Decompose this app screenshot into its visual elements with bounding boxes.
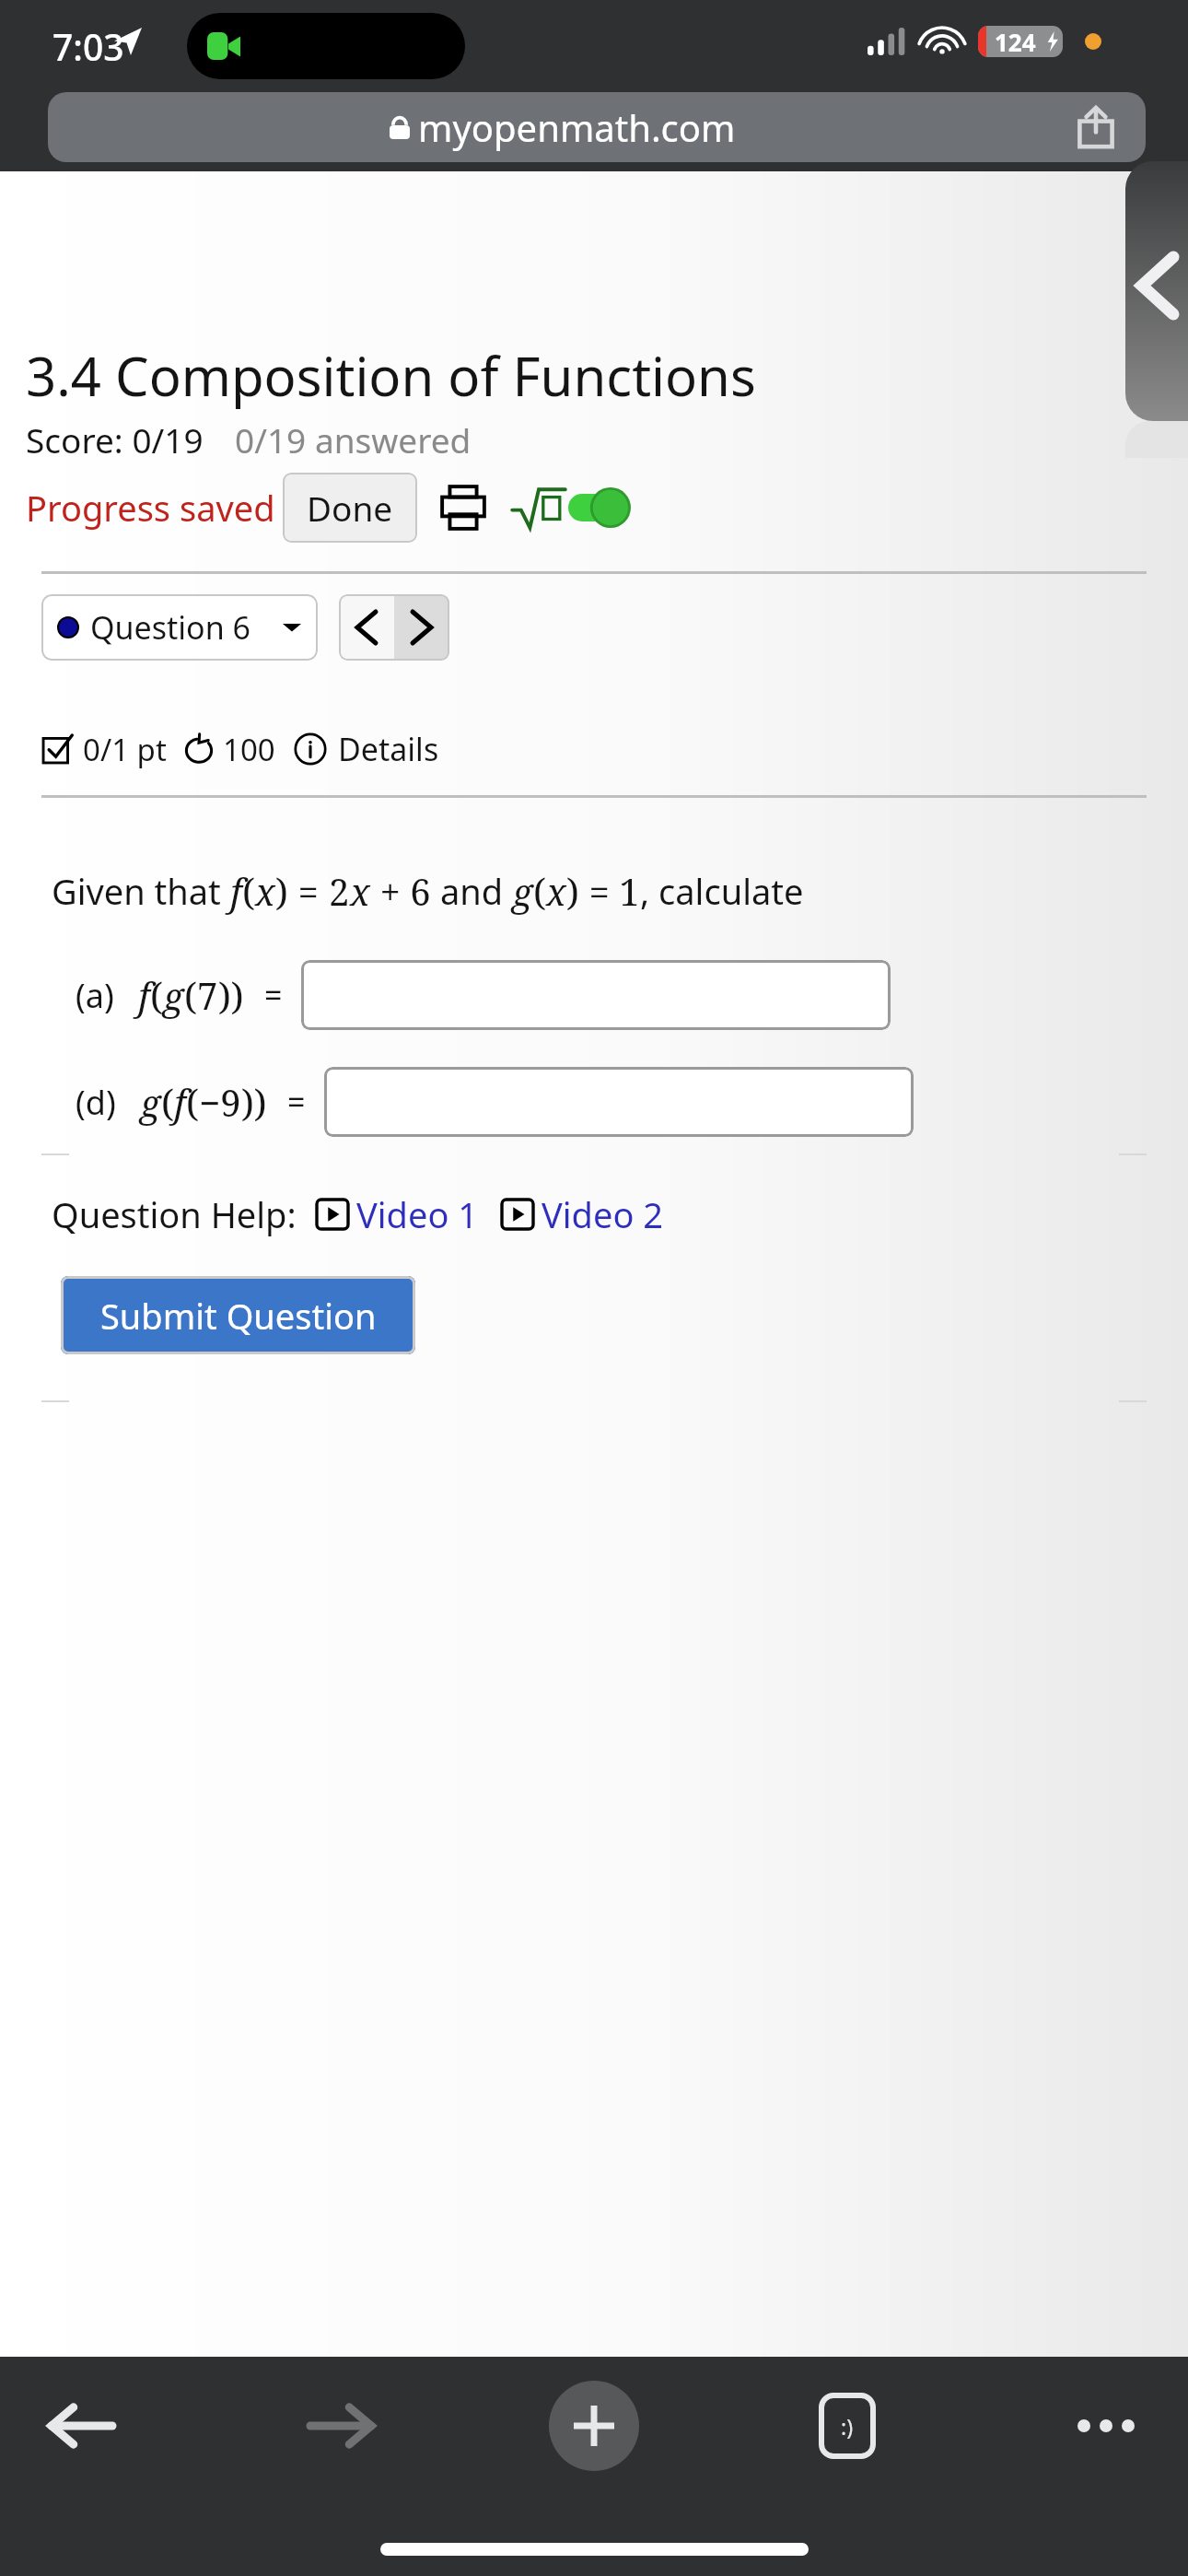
staticText: ( bbox=[161, 1077, 174, 1127]
button[interactable]: Done bbox=[283, 473, 417, 543]
staticText: Question 6 bbox=[90, 606, 250, 649]
button[interactable]: Toggle equation editor bbox=[568, 486, 636, 530]
staticText: = 1 bbox=[579, 866, 640, 916]
staticText: 100 bbox=[223, 729, 275, 770]
staticText: 7:03 bbox=[52, 22, 124, 71]
staticText: (d) bbox=[76, 1080, 116, 1125]
button[interactable]: Video 1 bbox=[317, 1190, 479, 1238]
staticText: f bbox=[138, 970, 150, 1020]
staticText: ( bbox=[242, 866, 255, 916]
staticText: Video 2 bbox=[542, 1190, 664, 1238]
staticText: x bbox=[255, 866, 275, 916]
button[interactable]: Answer field (a) bbox=[301, 960, 891, 1030]
staticText: ) bbox=[566, 866, 579, 916]
staticText: x bbox=[350, 866, 370, 916]
button[interactable]: Next question bbox=[394, 594, 449, 661]
button[interactable]: Video 2 bbox=[502, 1190, 664, 1238]
staticText: ( bbox=[533, 866, 546, 916]
staticText: g bbox=[512, 866, 533, 916]
staticText: = bbox=[288, 866, 329, 916]
button[interactable]: Math mode bbox=[511, 484, 566, 532]
button[interactable]: Share bbox=[1077, 106, 1114, 148]
staticText: g bbox=[163, 970, 184, 1020]
button[interactable]: Details bbox=[338, 728, 439, 770]
staticText: myopenmath.com bbox=[418, 102, 736, 152]
staticText: Done bbox=[307, 485, 393, 531]
staticText: 7 bbox=[197, 970, 218, 1020]
staticText: )) bbox=[218, 970, 244, 1020]
staticText: (a) bbox=[76, 973, 114, 1018]
staticText: 0/1 pt bbox=[83, 729, 167, 770]
staticText: ( bbox=[184, 970, 197, 1020]
button[interactable]: Print bbox=[439, 484, 487, 532]
button[interactable]: Submit Question bbox=[61, 1276, 415, 1354]
staticText: ( bbox=[150, 970, 163, 1020]
staticText: 2 bbox=[329, 866, 350, 916]
staticText: :) bbox=[841, 2412, 854, 2441]
staticText: )) bbox=[241, 1077, 267, 1127]
staticText: Question Help: bbox=[52, 1190, 297, 1238]
staticText: f bbox=[230, 866, 242, 916]
staticText: 0/19 answered bbox=[235, 416, 472, 463]
button[interactable]: Previous question bbox=[339, 594, 394, 661]
staticText: x bbox=[546, 866, 566, 916]
staticText: g bbox=[140, 1077, 161, 1127]
button[interactable]: Question 6 bbox=[41, 594, 318, 661]
staticText: 124 bbox=[995, 26, 1036, 57]
staticText: 3.4 Composition of Functions bbox=[26, 339, 756, 412]
button[interactable]: Forward bbox=[290, 2375, 391, 2476]
staticText: + 6 bbox=[370, 866, 431, 916]
button[interactable]: myopenmath.com bbox=[48, 92, 1146, 162]
staticText: −9 bbox=[199, 1077, 241, 1127]
staticText: f bbox=[174, 1077, 186, 1127]
staticText: ( bbox=[186, 1077, 199, 1127]
staticText: = bbox=[287, 1081, 306, 1123]
staticText: Submit Question bbox=[100, 1292, 377, 1340]
staticText: Given that bbox=[52, 867, 230, 915]
staticText: ) bbox=[275, 866, 288, 916]
button[interactable]: Back bbox=[31, 2375, 133, 2476]
staticText: , calculate bbox=[640, 867, 804, 915]
staticText: Video 1 bbox=[356, 1190, 479, 1238]
button[interactable]: Answer field (d) bbox=[324, 1067, 914, 1137]
staticText: Progress saved bbox=[26, 484, 275, 532]
button[interactable]: Details info bbox=[294, 732, 327, 766]
button[interactable]: More bbox=[1055, 2375, 1157, 2476]
staticText: Score: 0/19 bbox=[26, 416, 204, 463]
button[interactable]: Tabs bbox=[797, 2375, 898, 2476]
button[interactable]: New tab bbox=[549, 2381, 639, 2471]
staticText: = bbox=[264, 974, 283, 1016]
staticText: and bbox=[431, 867, 512, 915]
button[interactable]: Go back bbox=[1125, 161, 1188, 421]
